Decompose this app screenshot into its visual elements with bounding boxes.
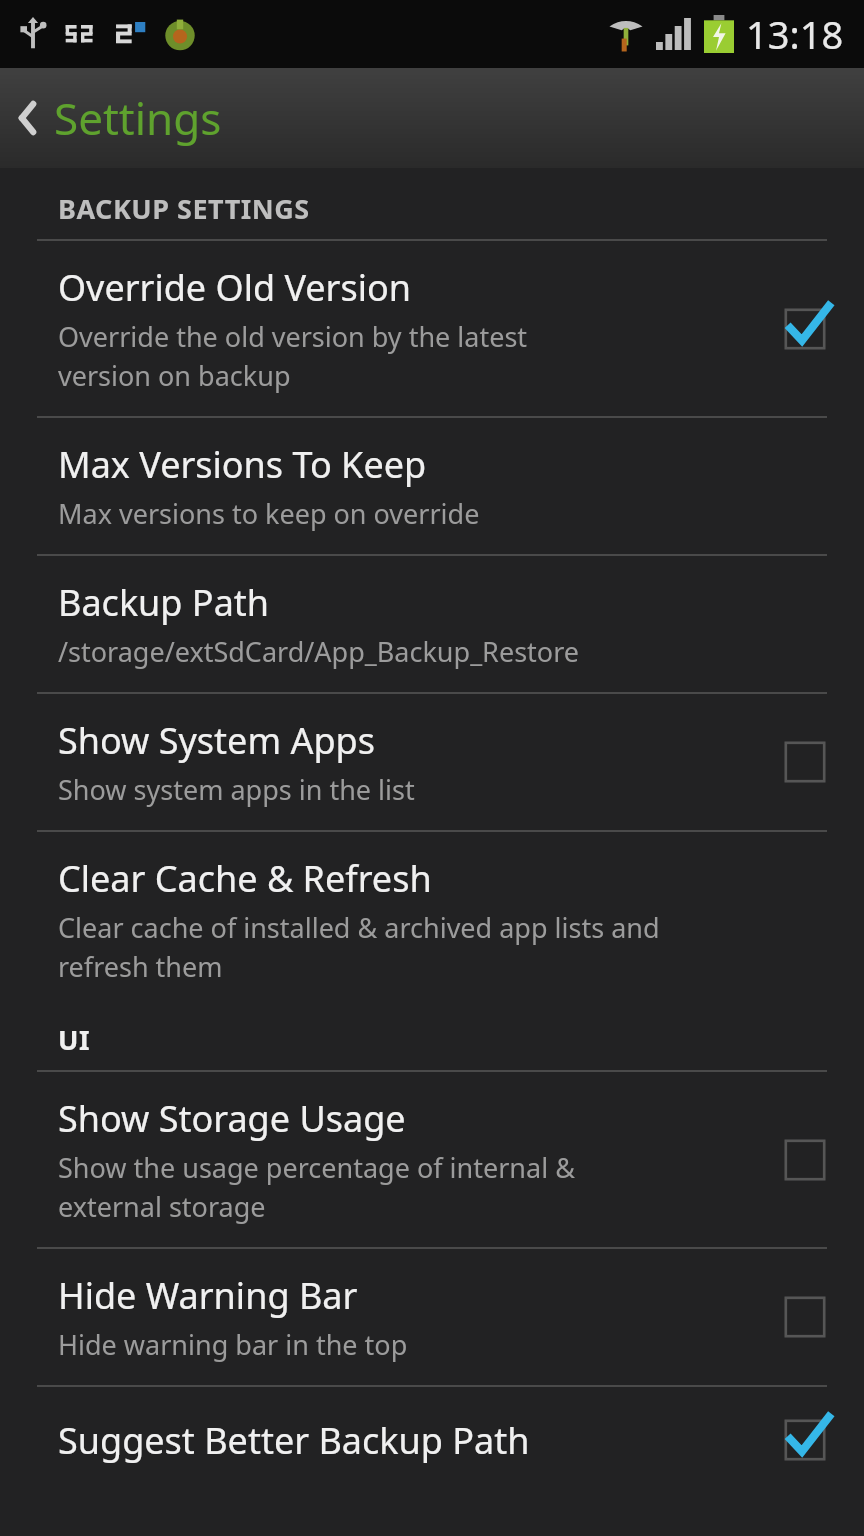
staticText: Clear cache of installed & archived app …	[58, 909, 660, 985]
button[interactable]: Back	[0, 68, 246, 168]
staticText: Show System Apps	[58, 716, 375, 765]
staticText: Show Storage Usage	[58, 1094, 406, 1143]
button[interactable]: Unchecked	[774, 731, 836, 793]
button[interactable]: Suggest Better Backup Path	[0, 1387, 864, 1493]
staticText: Backup Path	[58, 578, 270, 627]
staticText: Max versions to keep on override	[58, 495, 480, 532]
staticText: Override the old version by the latest v…	[58, 318, 528, 394]
button[interactable]: Show System Apps	[0, 694, 864, 830]
other: Back	[14, 96, 40, 140]
staticText: Show the usage percentage of internal & …	[58, 1149, 575, 1225]
staticText: /storage/extSdCard/App_Backup_Restore	[58, 633, 579, 670]
staticText: 13:18	[746, 8, 844, 60]
staticText: BACKUP SETTINGS	[58, 190, 310, 227]
button[interactable]: Unchecked	[774, 1129, 836, 1191]
button[interactable]: Max Versions To Keep	[0, 418, 864, 554]
button[interactable]: Backup Path	[0, 556, 864, 692]
button[interactable]: Checked	[774, 298, 836, 360]
button[interactable]: Show Storage Usage	[0, 1072, 864, 1247]
button[interactable]: Hide Warning Bar	[0, 1249, 864, 1385]
button[interactable]: Checked	[774, 1409, 836, 1471]
staticText: Hide Warning Bar	[58, 1271, 358, 1320]
staticText: Max Versions To Keep	[58, 440, 427, 489]
button[interactable]: Unchecked	[774, 1286, 836, 1348]
button[interactable]: Clear Cache & Refresh	[0, 832, 864, 1007]
staticText: Settings	[54, 88, 222, 148]
staticText: Override Old Version	[58, 263, 412, 312]
staticText: Clear Cache & Refresh	[58, 854, 432, 903]
staticText: UI	[58, 1021, 90, 1058]
staticText: Hide warning bar in the top	[58, 1326, 408, 1363]
staticText: Show system apps in the list	[58, 771, 415, 808]
button[interactable]: Override Old Version	[0, 241, 864, 416]
staticText: Suggest Better Backup Path	[58, 1416, 530, 1465]
